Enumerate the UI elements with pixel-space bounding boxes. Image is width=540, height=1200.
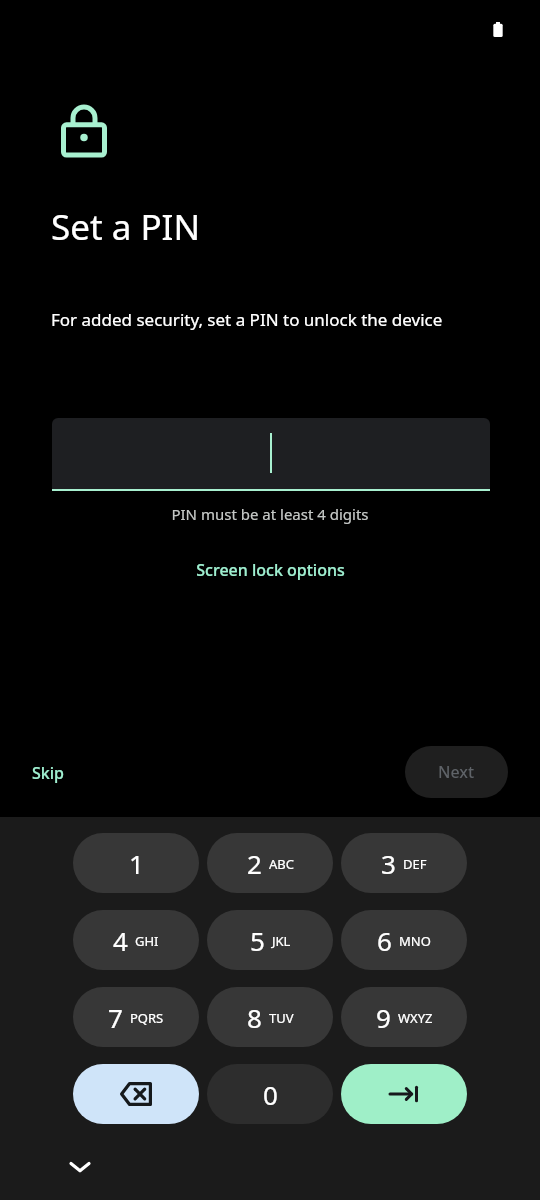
staticText: Next [438,761,475,783]
staticText: JKL [272,932,291,950]
button[interactable]: Screen lock options [170,552,370,588]
staticText: ABC [269,855,294,873]
staticText: DEF [403,855,427,873]
staticText: 2 [247,846,262,881]
staticText: TUV [269,1009,294,1027]
staticText: 3 [381,846,396,881]
staticText: 9 [376,1000,391,1035]
button[interactable]: 9 [341,987,467,1047]
staticText: GHI [135,932,159,950]
staticText: PQRS [130,1009,164,1027]
staticText: WXYZ [398,1009,433,1027]
button[interactable]: 2 [207,833,333,893]
button[interactable]: 5 [207,910,333,970]
staticText: 4 [113,923,128,958]
button[interactable]: 8 [207,987,333,1047]
staticText: For added security, set a PIN to unlock … [51,308,443,331]
button[interactable]: 1 [73,833,199,893]
staticText: MNO [399,932,431,950]
staticText: 1 [129,846,144,881]
staticText: 7 [108,1000,123,1035]
button[interactable]: 3 [341,833,467,893]
staticText: 6 [377,923,392,958]
button[interactable]: Backspace [73,1064,199,1124]
staticText: Skip [32,762,64,784]
staticText: 8 [247,1000,262,1035]
staticText: Screen lock options [196,559,345,581]
button[interactable]: Enter [341,1064,467,1124]
staticText: 0 [263,1077,278,1112]
staticText: PIN must be at least 4 digits [0,504,540,524]
button[interactable]: 7 [73,987,199,1047]
staticText: Set a PIN [51,203,201,251]
button[interactable]: 6 [341,910,467,970]
button[interactable]: Next [405,746,508,798]
staticText: 5 [250,923,265,958]
button[interactable]: Skip [32,752,64,794]
button[interactable]: Hide keyboard [58,1149,102,1185]
button[interactable] [52,418,490,490]
button[interactable]: 0 [207,1064,333,1124]
button[interactable]: 4 [73,910,199,970]
